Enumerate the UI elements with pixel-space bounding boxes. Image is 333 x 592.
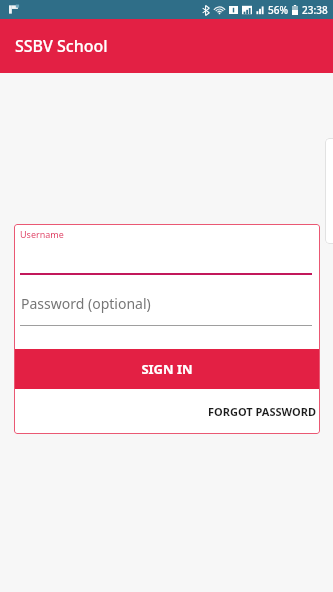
staticText: SIGN IN xyxy=(141,360,193,378)
staticText: 23:38 xyxy=(302,3,328,17)
staticText: SSBV School xyxy=(15,35,108,57)
button[interactable] xyxy=(20,226,314,274)
button[interactable]: SIGN IN xyxy=(15,349,319,389)
button[interactable]: Password (optional) xyxy=(20,280,314,326)
staticText: Password (optional) xyxy=(21,294,151,313)
staticText: Username xyxy=(20,228,64,240)
staticText: FORGOT PASSWORD xyxy=(208,404,317,419)
staticText: 56% xyxy=(268,3,288,17)
button[interactable]: FORGOT PASSWORD xyxy=(190,396,318,426)
